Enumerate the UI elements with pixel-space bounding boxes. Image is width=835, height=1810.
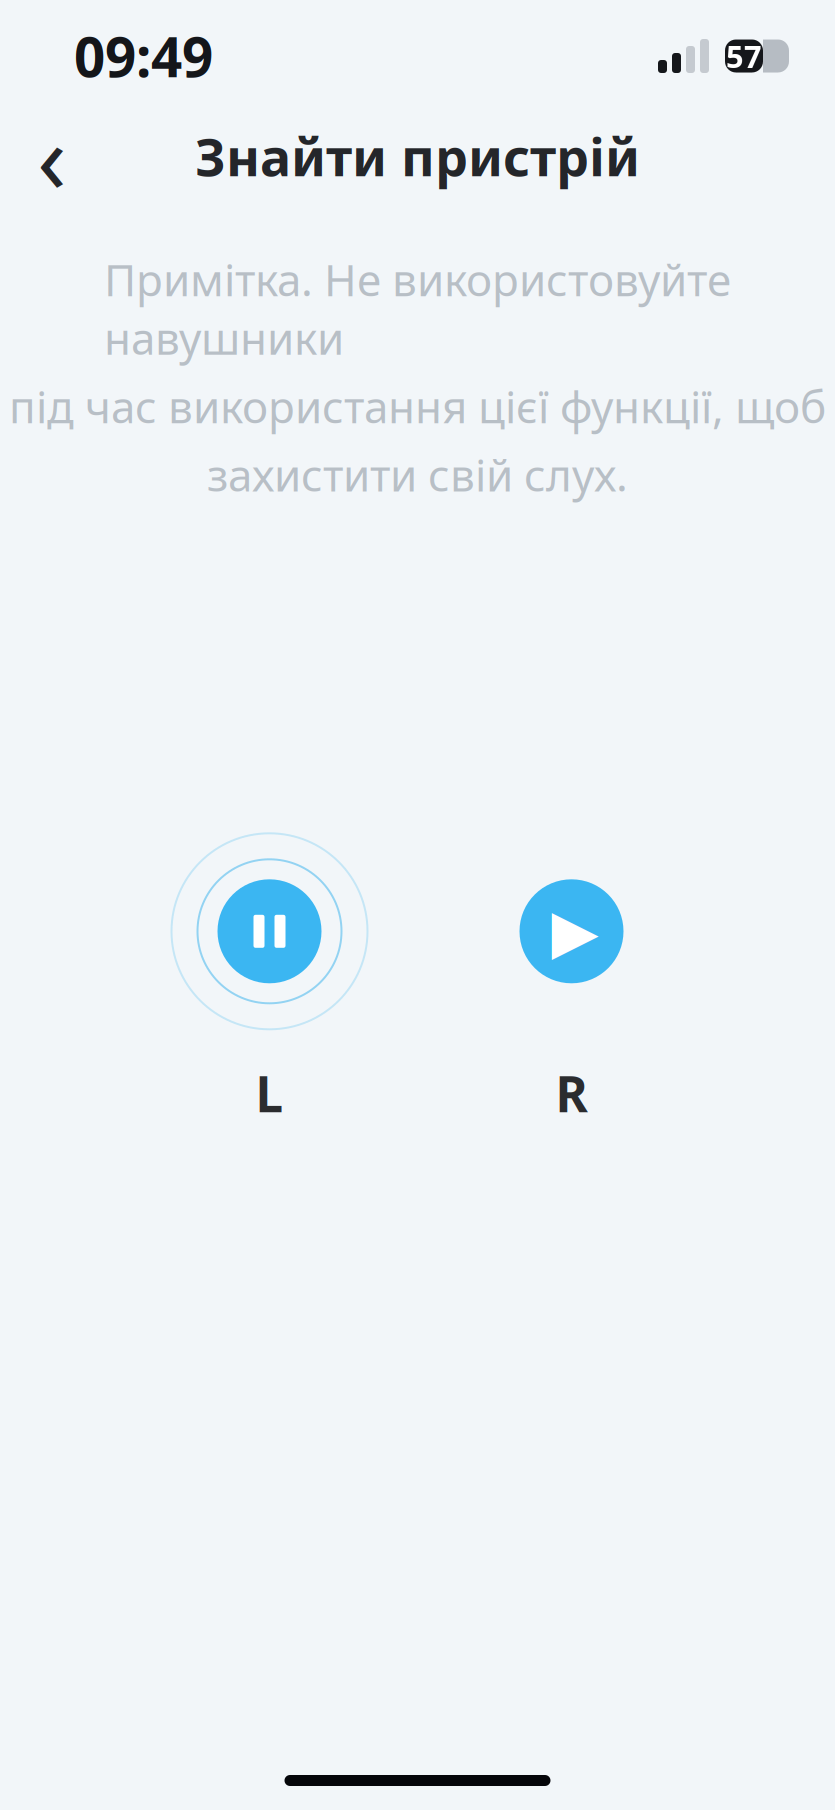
- staticText: 57: [726, 36, 762, 76]
- staticText: захистити свій слух.: [207, 445, 628, 504]
- staticText: ‹: [37, 92, 67, 220]
- staticText: Знайти пристрій: [195, 121, 640, 191]
- staticText: Примітка. Не використовуйте навушники: [104, 250, 731, 367]
- staticText: L: [255, 1060, 283, 1126]
- staticText: R: [555, 1060, 587, 1126]
- button[interactable]: Play sound on right earbud: [468, 828, 674, 1034]
- staticText: 09:49: [74, 20, 213, 92]
- staticText: ▶: [551, 896, 598, 966]
- button[interactable]: Back: [14, 116, 90, 196]
- staticText: під час використання цієї функції, щоб: [9, 377, 826, 435]
- button[interactable]: Stop sound on left earbud: [166, 828, 372, 1034]
